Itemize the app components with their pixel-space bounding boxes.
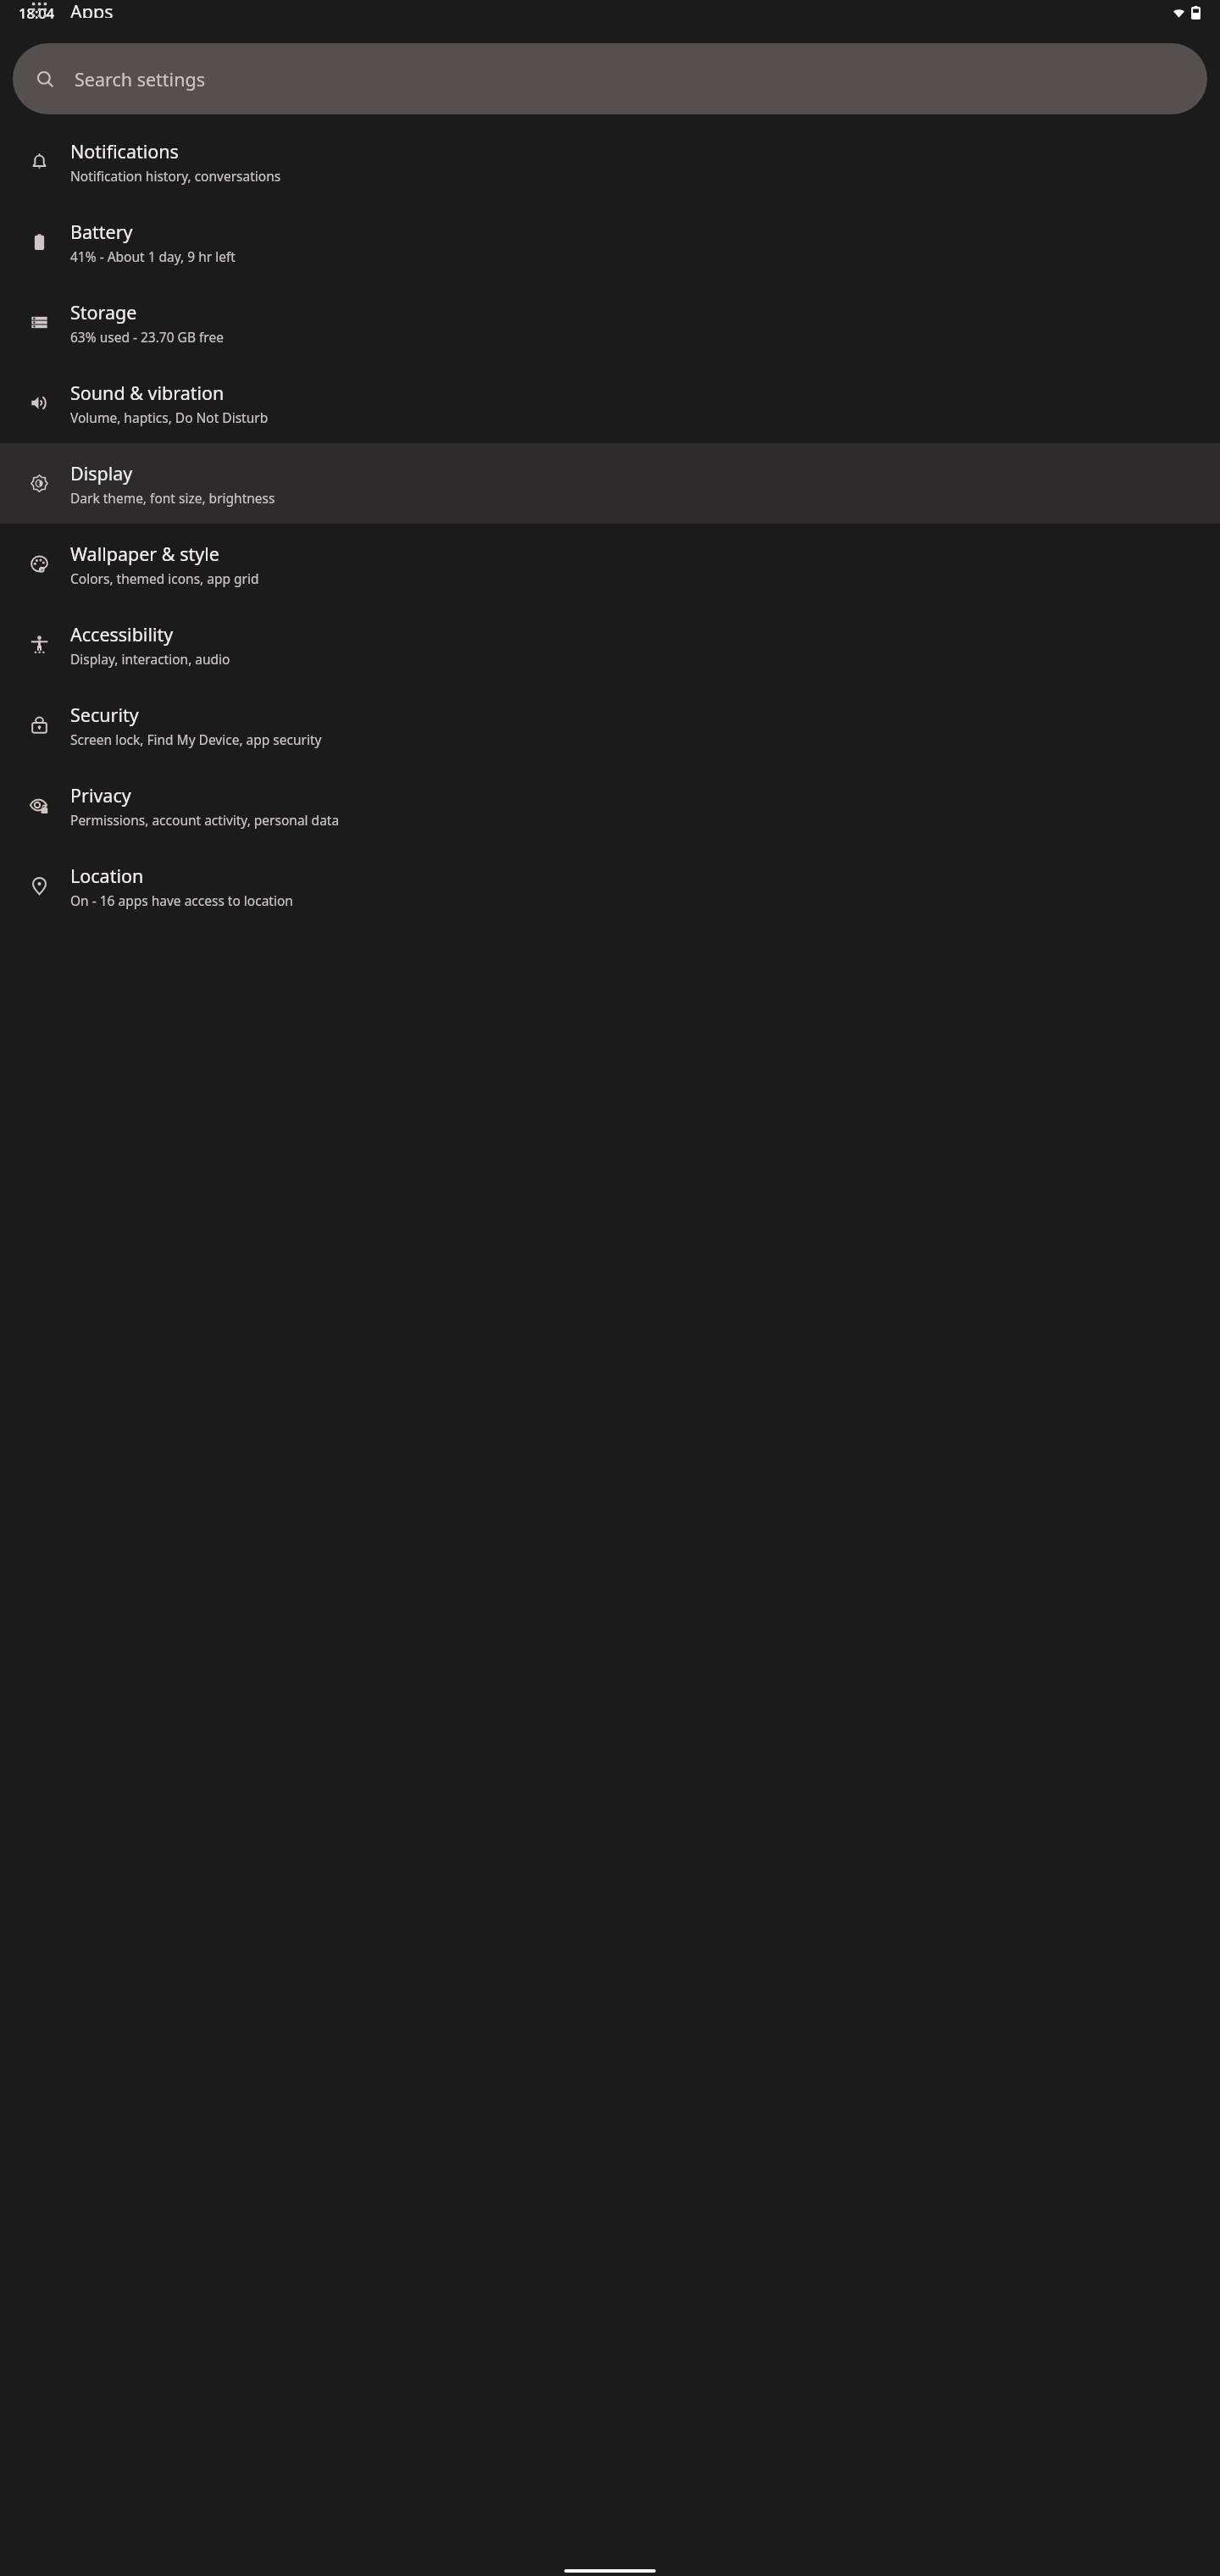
- staticText: Wallpaper & style: [70, 541, 219, 566]
- staticText: On - 16 apps have access to location: [70, 891, 293, 909]
- staticText: Security: [70, 702, 139, 727]
- staticText: Display, interaction, audio: [70, 650, 230, 668]
- staticText: Apps: [70, 0, 114, 18]
- button[interactable]: Battery: [0, 202, 1220, 282]
- button[interactable]: Wallpaper & style: [0, 524, 1220, 604]
- button[interactable]: Display: [0, 443, 1220, 524]
- staticText: 63% used - 23.70 GB free: [70, 328, 224, 346]
- staticText: Display: [70, 461, 133, 486]
- staticText: Volume, haptics, Do Not Disturb: [70, 408, 269, 426]
- button[interactable]: Privacy: [0, 765, 1220, 846]
- button[interactable]: Search settings: [13, 43, 1207, 114]
- button[interactable]: Location: [0, 846, 1220, 926]
- staticText: Dark theme, font size, brightness: [70, 489, 275, 507]
- button[interactable]: Notifications: [0, 121, 1220, 202]
- staticText: 41% - About 1 day, 9 hr left: [70, 247, 236, 265]
- staticText: Notifications: [70, 139, 179, 164]
- staticText: Location: [70, 863, 144, 888]
- staticText: Colors, themed icons, app grid: [70, 569, 259, 587]
- button[interactable]: Accessibility: [0, 604, 1220, 685]
- staticText: Storage: [70, 300, 137, 325]
- staticText: Screen lock, Find My Device, app securit…: [70, 730, 322, 748]
- staticText: Accessibility: [70, 622, 174, 647]
- button[interactable]: Security: [0, 685, 1220, 765]
- staticText: Notification history, conversations: [70, 167, 281, 185]
- button[interactable]: Apps: [0, 0, 1220, 18]
- staticText: Privacy: [70, 783, 131, 808]
- staticText: Sound & vibration: [70, 380, 225, 405]
- button[interactable]: Sound & vibration: [0, 363, 1220, 443]
- staticText: Battery: [70, 219, 133, 244]
- button[interactable]: Storage: [0, 282, 1220, 363]
- staticText: Search settings: [75, 67, 205, 92]
- staticText: Permissions, account activity, personal …: [70, 811, 340, 829]
- staticText: 18:04: [19, 3, 55, 22]
